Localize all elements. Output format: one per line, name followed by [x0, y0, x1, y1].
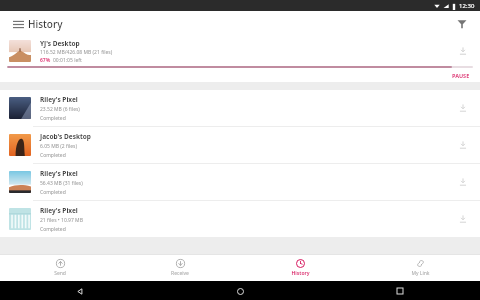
- button[interactable]: Riley's Pixel: [0, 164, 480, 200]
- button[interactable]: Download: [455, 137, 471, 153]
- button[interactable]: PAUSE: [448, 70, 474, 81]
- button[interactable]: YJ's Desktop: [0, 36, 480, 82]
- staticText: Jacob's Desktop: [40, 132, 91, 141]
- staticText: Riley's Pixel: [40, 95, 78, 104]
- staticText: 116.52 MB/426.08 MB (21 files): [40, 49, 113, 56]
- button[interactable]: Riley's Pixel: [0, 90, 480, 126]
- staticText: PAUSE: [452, 72, 470, 79]
- staticText: 6.05 MB (2 files): [40, 143, 77, 150]
- button[interactable]: Home: [232, 283, 248, 299]
- button[interactable]: Recent apps: [392, 283, 408, 299]
- staticText: History: [28, 17, 63, 31]
- button[interactable]: History: [240, 255, 360, 281]
- staticText: 21 files • 10.97 MB: [40, 217, 83, 224]
- button[interactable]: Receive: [120, 255, 240, 281]
- staticText: Completed: [40, 152, 66, 159]
- staticText: 67%: [40, 57, 51, 64]
- staticText: History: [291, 270, 310, 277]
- button[interactable]: Send: [0, 255, 120, 281]
- staticText: Completed: [40, 226, 66, 233]
- button[interactable]: Riley's Pixel: [0, 201, 480, 237]
- staticText: 56.43 MB (31 files): [40, 180, 83, 187]
- button[interactable]: Back: [72, 283, 88, 299]
- button[interactable]: Filter: [452, 14, 472, 34]
- staticText: 00:01:05 left: [53, 57, 82, 64]
- staticText: Completed: [40, 189, 66, 196]
- staticText: 12:30: [459, 2, 475, 10]
- staticText: Receive: [171, 270, 189, 277]
- button[interactable]: My Link: [360, 255, 480, 281]
- button[interactable]: Download: [455, 174, 471, 190]
- button[interactable]: Open navigation menu: [8, 14, 28, 34]
- button[interactable]: Jacob's Desktop: [0, 127, 480, 163]
- staticText: Completed: [40, 115, 66, 122]
- staticText: 23.52 MB (6 files): [40, 106, 80, 113]
- button[interactable]: Download: [455, 211, 471, 227]
- staticText: YJ's Desktop: [40, 39, 80, 48]
- staticText: My Link: [411, 270, 430, 277]
- staticText: Riley's Pixel: [40, 206, 78, 215]
- staticText: Riley's Pixel: [40, 169, 78, 178]
- staticText: Send: [54, 270, 66, 277]
- button[interactable]: Download: [455, 100, 471, 116]
- button[interactable]: Download: [455, 43, 471, 59]
